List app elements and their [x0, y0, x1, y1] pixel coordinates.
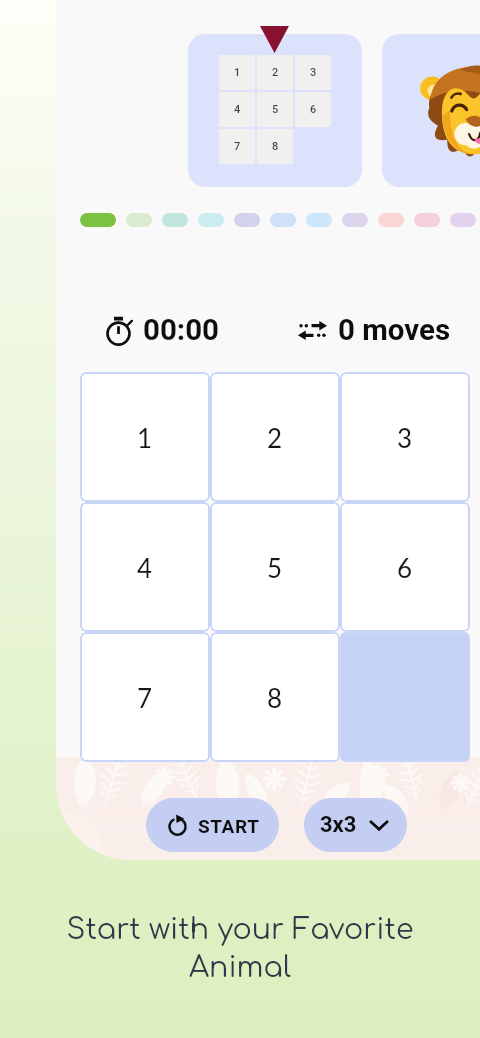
staticText: 3x3	[320, 812, 357, 838]
button[interactable]: 4	[80, 502, 210, 632]
staticText: START	[198, 815, 260, 837]
staticText: 7	[234, 140, 241, 153]
button[interactable]: Page 7	[306, 213, 332, 227]
staticText: 1	[137, 422, 153, 453]
button[interactable]: Page 4	[198, 213, 224, 227]
staticText: 4	[234, 103, 241, 116]
button[interactable]: Page 10	[414, 213, 440, 227]
button[interactable]: Page 11	[450, 213, 476, 227]
button[interactable]: Page 1	[80, 213, 116, 227]
staticText: 7	[137, 682, 153, 713]
staticText: 8	[267, 682, 283, 713]
button[interactable]: Lion puzzle	[382, 34, 480, 187]
staticText: 1	[234, 66, 241, 79]
button[interactable]: 6	[340, 502, 470, 632]
staticText: 6	[397, 552, 413, 583]
button[interactable]: Page 9	[378, 213, 404, 227]
staticText: Start with your Favorite Animal	[55, 914, 425, 984]
staticText: 5	[267, 552, 283, 583]
other: Moves	[297, 315, 328, 346]
button[interactable]: 1	[80, 372, 210, 502]
button[interactable]: 8	[210, 632, 340, 762]
button[interactable]: Page 8	[342, 213, 368, 227]
button[interactable]: Page 5	[234, 213, 260, 227]
button[interactable]: START	[146, 798, 279, 852]
staticText: 3	[310, 66, 317, 79]
staticText: 5	[272, 103, 279, 116]
button[interactable]: Page 2	[126, 213, 152, 227]
staticText: 6	[310, 103, 317, 116]
staticText: 3	[397, 422, 413, 453]
staticText: 2	[272, 66, 279, 79]
button[interactable]: 7	[80, 632, 210, 762]
staticText: 00:00	[143, 313, 220, 348]
button[interactable]: 2	[210, 372, 340, 502]
button[interactable]: 3x3	[304, 798, 407, 852]
button[interactable]: 5	[210, 502, 340, 632]
other: Elapsed time	[103, 315, 134, 346]
button[interactable]: Page 6	[270, 213, 296, 227]
button[interactable]: 3	[340, 372, 470, 502]
staticText: 0 moves	[338, 313, 451, 348]
button[interactable]: Numbers puzzle	[188, 34, 362, 187]
other: Choose board size	[367, 813, 391, 837]
staticText: 2	[267, 422, 283, 453]
staticText: 4	[137, 552, 153, 583]
button[interactable]: Page 3	[162, 213, 188, 227]
staticText: 8	[272, 140, 279, 153]
